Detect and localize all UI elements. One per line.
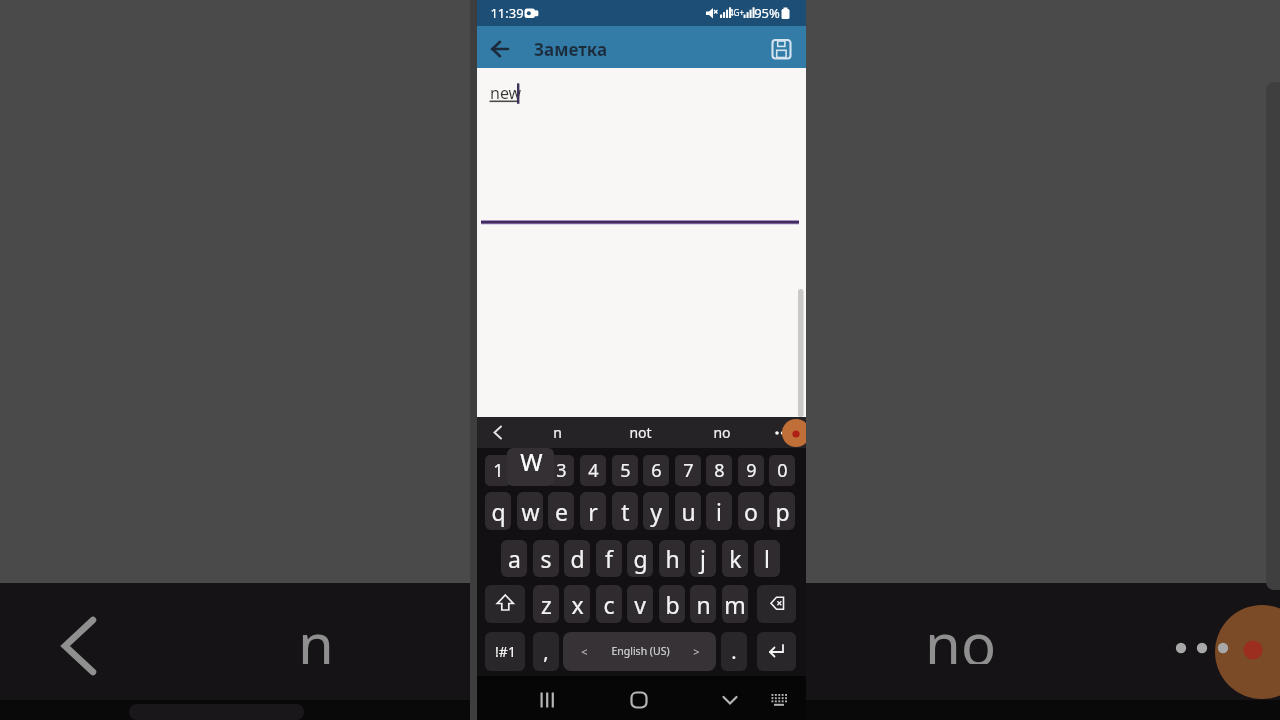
button[interactable]: [563, 632, 716, 671]
button[interactable]: [766, 33, 796, 63]
staticText: 8: [714, 458, 725, 483]
button[interactable]: f: [596, 540, 622, 577]
button[interactable]: z: [533, 585, 559, 623]
staticText: 0: [777, 458, 788, 483]
staticText: e: [555, 496, 568, 527]
staticText: ,: [543, 638, 549, 665]
button[interactable]: m: [722, 585, 748, 623]
button[interactable]: d: [564, 540, 590, 577]
button[interactable]: u: [675, 492, 701, 530]
staticText: r: [588, 496, 598, 527]
staticText: a: [508, 543, 521, 574]
button[interactable]: !#1: [485, 632, 525, 671]
button[interactable]: b: [659, 585, 685, 623]
staticText: 5: [620, 458, 631, 483]
staticText: s: [540, 543, 552, 574]
button[interactable]: [485, 585, 525, 623]
button[interactable]: [477, 26, 806, 68]
staticText: n: [696, 589, 711, 620]
button[interactable]: ,: [533, 632, 559, 671]
button[interactable]: .: [721, 632, 747, 671]
staticText: x: [571, 589, 584, 620]
button[interactable]: p: [769, 492, 795, 530]
button[interactable]: 4: [580, 455, 606, 486]
staticText: b: [665, 589, 680, 620]
staticText: not: [629, 423, 652, 442]
button[interactable]: j: [690, 540, 716, 577]
button[interactable]: 1: [485, 455, 511, 486]
staticText: n: [298, 604, 334, 664]
button[interactable]: 0: [769, 455, 795, 486]
button[interactable]: [507, 448, 554, 486]
staticText: W: [520, 445, 543, 478]
button[interactable]: [623, 684, 655, 716]
staticText: k: [729, 543, 742, 574]
button[interactable]: w: [517, 492, 543, 530]
staticText: 11:39: [490, 4, 524, 22]
button[interactable]: 9: [738, 455, 764, 486]
staticText: z: [541, 589, 552, 620]
staticText: 6: [651, 458, 662, 483]
staticText: Заметка: [534, 38, 608, 61]
button[interactable]: 8: [706, 455, 732, 486]
staticText: English (US): [611, 644, 670, 658]
staticText: 7: [683, 458, 694, 483]
button[interactable]: [532, 684, 564, 716]
button[interactable]: s: [533, 540, 559, 577]
button[interactable]: n: [690, 585, 716, 623]
button[interactable]: a: [501, 540, 527, 577]
staticText: i: [716, 496, 722, 527]
staticText: .: [731, 638, 737, 665]
staticText: q: [491, 496, 506, 527]
button[interactable]: [757, 632, 796, 671]
button[interactable]: 7: [675, 455, 701, 486]
staticText: j: [700, 543, 706, 574]
staticText: no: [925, 604, 996, 664]
staticText: >: [693, 644, 700, 659]
staticText: !#1: [495, 642, 516, 661]
button[interactable]: c: [596, 585, 622, 623]
staticText: p: [775, 496, 790, 527]
button[interactable]: o: [738, 492, 764, 530]
staticText: v: [634, 589, 646, 620]
button[interactable]: 3: [548, 455, 574, 486]
staticText: new: [490, 82, 522, 102]
button[interactable]: q: [485, 492, 511, 530]
staticText: n: [553, 423, 562, 442]
button[interactable]: [757, 585, 796, 623]
button[interactable]: [477, 68, 806, 417]
staticText: w: [521, 496, 540, 527]
staticText: h: [665, 543, 680, 574]
button[interactable]: v: [627, 585, 653, 623]
button[interactable]: r: [580, 492, 606, 530]
button[interactable]: h: [659, 540, 685, 577]
staticText: o: [744, 496, 758, 527]
button[interactable]: g: [627, 540, 653, 577]
button[interactable]: x: [564, 585, 590, 623]
button[interactable]: [763, 684, 795, 716]
staticText: f: [605, 543, 613, 574]
staticText: 1: [493, 458, 504, 483]
button[interactable]: k: [722, 540, 748, 577]
staticText: y: [650, 496, 662, 527]
button[interactable]: y: [643, 492, 669, 530]
staticText: g: [633, 543, 648, 574]
staticText: t: [621, 496, 630, 527]
button[interactable]: 5: [612, 455, 638, 486]
staticText: 4: [588, 458, 599, 483]
staticText: <: [581, 644, 588, 659]
button[interactable]: [477, 26, 523, 68]
button[interactable]: t: [612, 492, 638, 530]
staticText: d: [570, 543, 585, 574]
staticText: l: [764, 543, 770, 574]
staticText: 3: [556, 458, 567, 483]
staticText: 9: [746, 458, 757, 483]
button[interactable]: i: [706, 492, 732, 530]
staticText: u: [681, 496, 696, 527]
button[interactable]: [714, 684, 746, 716]
button[interactable]: e: [548, 492, 574, 530]
staticText: no: [713, 423, 731, 442]
staticText: m: [724, 589, 746, 620]
button[interactable]: l: [754, 540, 780, 577]
button[interactable]: 6: [643, 455, 669, 486]
